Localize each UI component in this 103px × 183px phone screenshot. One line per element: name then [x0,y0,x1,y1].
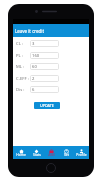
staticText: Profile [76,152,87,157]
staticText: 3 [32,41,35,47]
staticText: PL : [16,53,30,59]
staticText: Leave it credit [15,28,44,34]
staticText: 6 [32,87,35,93]
staticText: 2 [32,76,35,82]
staticText: CL : [16,41,30,47]
staticText: Dis : [16,87,30,93]
button[interactable]: Add [44,146,59,159]
button[interactable]: Settings [59,146,74,159]
button[interactable]: Profile [74,146,89,159]
staticText: Set [64,152,69,157]
staticText: C-EFF : [16,76,30,82]
staticText: Add [48,152,55,157]
staticText: UPDATE [40,103,54,108]
button[interactable]: Stats [29,146,44,159]
staticText: 160 [32,53,40,59]
staticText: Home [16,152,26,157]
button[interactable]: Home [13,146,29,159]
staticText: Stats [33,152,41,157]
button[interactable]: UPDATE [34,102,60,109]
staticText: ML : [16,64,30,70]
staticText: 60 [32,64,37,70]
